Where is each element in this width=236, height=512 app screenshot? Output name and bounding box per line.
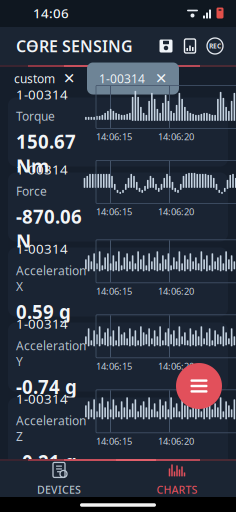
- staticText: ✕: [155, 70, 167, 87]
- staticText: -0.21 g: [16, 449, 77, 474]
- staticText: 14:06:15: [96, 435, 132, 447]
- staticText: 14:06:15: [96, 130, 132, 143]
- button[interactable]: Record: [202, 32, 228, 60]
- staticText: DEVICES: [37, 482, 81, 497]
- staticText: 14:06:15: [96, 360, 132, 372]
- staticText: 1-00314: [16, 160, 68, 178]
- staticText: 14:06:20: [158, 285, 194, 297]
- staticText: C: [16, 35, 26, 57]
- staticText: Acceleration Z: [16, 412, 86, 444]
- staticText: 1-00314: [16, 315, 68, 332]
- button[interactable]: CHARTS: [118, 461, 236, 497]
- staticText: 14:06:20: [158, 130, 194, 143]
- button[interactable]: 1-00314: [8, 172, 228, 241]
- button[interactable]: 1-00314: [8, 97, 228, 166]
- button[interactable]: custom: [10, 62, 79, 94]
- staticText: 1-00314: [16, 390, 68, 407]
- button[interactable]: Export report: [178, 32, 202, 60]
- staticText: 14:06: [33, 4, 69, 22]
- staticText: CHARTS: [156, 482, 197, 497]
- staticText: RE SENSING: [39, 35, 133, 57]
- staticText: 1-00314: [16, 85, 68, 103]
- staticText: 1-00314: [16, 240, 68, 257]
- staticText: 14:06:15: [96, 205, 132, 218]
- staticText: ✕: [63, 70, 75, 87]
- staticText: 14:06:20: [158, 435, 194, 447]
- button[interactable]: Menu: [176, 363, 222, 409]
- staticText: -870.06 N: [16, 204, 82, 254]
- staticText: Acceleration X: [16, 262, 86, 294]
- button[interactable]: DEVICES: [0, 461, 118, 497]
- button[interactable]: 1-00314: [8, 397, 228, 466]
- staticText: Torque: [16, 108, 55, 124]
- staticText: Acceleration Y: [16, 337, 86, 369]
- staticText: 14:06:20: [158, 205, 194, 218]
- button[interactable]: 1-00314: [8, 247, 228, 316]
- staticText: 150.67 Nm: [16, 129, 76, 179]
- staticText: -0.74 g: [16, 374, 77, 399]
- staticText: O: [26, 35, 39, 57]
- staticText: 14:06:15: [96, 285, 132, 297]
- button[interactable]: 1-00314: [8, 322, 228, 391]
- button[interactable]: 1-00314: [87, 62, 179, 94]
- button[interactable]: Save: [154, 32, 178, 60]
- staticText: REC: [209, 42, 221, 50]
- staticText: 0.59 g: [16, 299, 71, 324]
- staticText: Force: [16, 183, 47, 199]
- staticText: 1-00314: [99, 70, 145, 86]
- staticText: 14:06:20: [158, 360, 194, 372]
- staticText: custom: [14, 70, 55, 86]
